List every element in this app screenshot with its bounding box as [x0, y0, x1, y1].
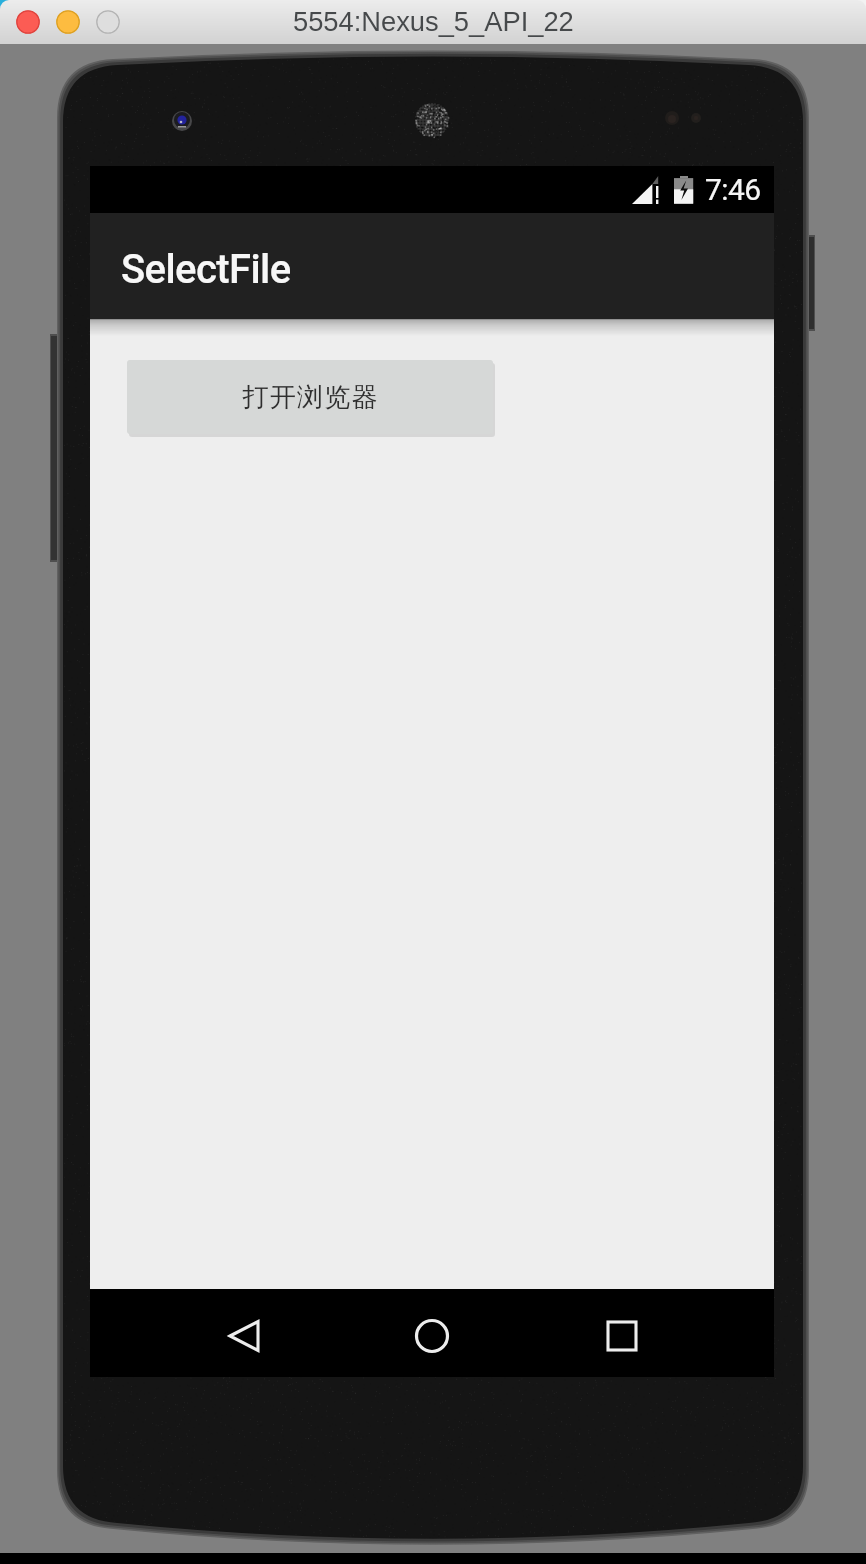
button[interactable]: Minimise window	[55, 9, 81, 35]
staticText: SelectFile	[121, 246, 291, 293]
staticText: 7:46	[705, 172, 761, 207]
button[interactable]: Recent apps	[582, 1296, 662, 1376]
staticText: 打开浏览器	[242, 381, 378, 414]
button[interactable]: Back	[204, 1296, 284, 1376]
button[interactable]: 打开浏览器	[127, 360, 493, 434]
button[interactable]: Home	[392, 1296, 472, 1376]
staticText: 5554:Nexus_5_API_22	[293, 6, 574, 36]
button[interactable]: Close window	[15, 9, 41, 35]
button[interactable]: Zoom window	[95, 9, 121, 35]
